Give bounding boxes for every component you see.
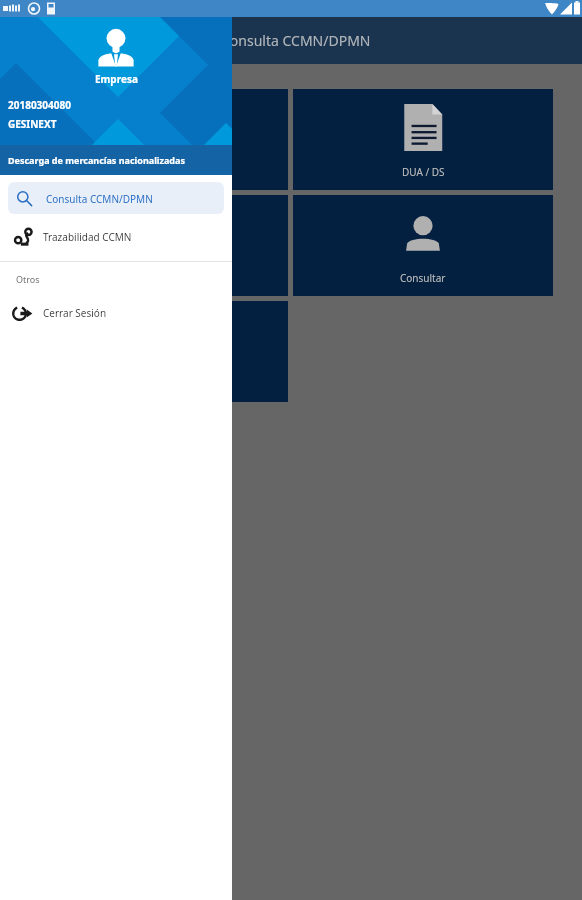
button[interactable]: Consultar xyxy=(29,195,288,296)
staticText: Consulta CCMN/DPMN xyxy=(46,192,153,206)
button[interactable]: Trazabilidad CCMN xyxy=(0,220,232,254)
staticText: Consultar xyxy=(400,271,446,285)
staticText: DUA / DS xyxy=(402,165,445,179)
staticText: Empresa xyxy=(95,72,138,86)
staticText: Descarga de mercancías nacionalizadas xyxy=(8,154,185,166)
other: Buscar xyxy=(16,190,33,207)
staticText: Trazabilidad CCMN xyxy=(43,230,132,244)
staticText: Cerrar Sesión xyxy=(43,306,107,320)
staticText: GESINEXT xyxy=(8,117,57,131)
button[interactable]: Buscar xyxy=(8,182,224,214)
staticText: Consulta CCMN/DPMN xyxy=(221,31,371,50)
button[interactable]: DUA / DS xyxy=(293,89,553,190)
staticText: 20180304080 xyxy=(8,98,71,112)
staticText: Otros xyxy=(16,273,40,285)
button[interactable]: Cerrar Sesión xyxy=(0,295,232,331)
button[interactable] xyxy=(29,301,288,402)
button[interactable]: Consultar xyxy=(293,195,553,296)
staticText: DUA / DS xyxy=(138,165,181,179)
button[interactable]: DUA / DS xyxy=(29,89,288,190)
